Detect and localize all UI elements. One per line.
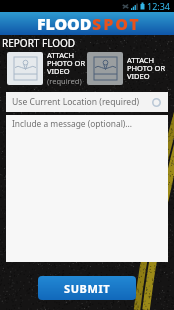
other: Locating [152,98,161,107]
staticText: SUBMIT [64,281,111,296]
staticText: Include a message (optional)... [12,118,133,129]
staticText: SPOT [92,13,141,35]
button[interactable]: Include a message (optional)... [6,115,168,262]
staticText: Use Current Location (required) [12,96,140,108]
staticText: (required) [47,76,82,86]
button[interactable]: SUBMIT [38,276,136,300]
staticText: 12:34 [147,0,171,12]
button[interactable]: ATTACH PHOTO OR VIDEO [7,50,80,86]
staticText: REPORT FLOOD [2,36,174,50]
staticText: ATTACH PHOTO OR VIDEO [47,50,86,76]
button[interactable]: Use Current Location (required) [6,92,168,112]
staticText: FLOOD [37,13,92,35]
staticText: ATTACH PHOTO OR VIDEO [127,55,166,81]
button[interactable]: ATTACH PHOTO OR VIDEO [87,50,174,86]
